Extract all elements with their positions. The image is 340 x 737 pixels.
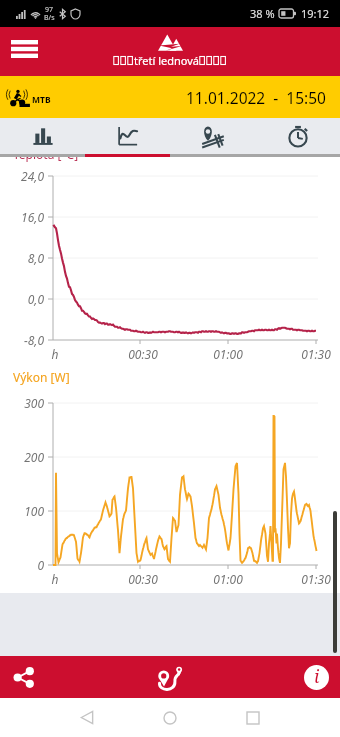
staticText: 0,0 xyxy=(0,291,44,307)
button[interactable]: Show route on map xyxy=(114,656,227,698)
staticText: 0 xyxy=(0,557,44,573)
button[interactable]: Recent apps xyxy=(211,698,294,737)
staticText: 11.01.2022 - 15:50 xyxy=(186,87,326,108)
button[interactable]: Info xyxy=(227,656,340,698)
staticText: třetí lednová xyxy=(134,53,199,68)
button[interactable]: Share xyxy=(0,656,114,698)
staticText: 01:30 xyxy=(286,571,340,587)
staticText: 01:00 xyxy=(198,346,258,362)
staticText: MTB xyxy=(32,94,51,106)
staticText: 97 xyxy=(45,5,54,15)
button[interactable]: Laps xyxy=(255,118,340,154)
button[interactable]: Activity type MTB xyxy=(6,87,51,107)
button[interactable]: Map xyxy=(170,118,255,154)
staticText: i xyxy=(314,665,320,689)
staticText: 100 xyxy=(0,503,44,519)
staticText: 00:30 xyxy=(113,346,173,362)
staticText: 16,0 xyxy=(0,209,44,225)
staticText: 19:12 xyxy=(301,6,330,21)
button[interactable]: Menu xyxy=(6,36,42,62)
staticText: 200 xyxy=(0,449,44,465)
staticText: -8,0 xyxy=(0,332,44,348)
staticText: 8,0 xyxy=(0,250,44,266)
staticText: 01:00 xyxy=(198,571,258,587)
staticText: 24,0 xyxy=(0,168,44,184)
button[interactable]: Graphs xyxy=(85,118,170,154)
staticText: 38 % xyxy=(250,6,275,21)
button[interactable]: Statistics xyxy=(0,118,85,154)
staticText: 01:30 xyxy=(286,346,340,362)
button[interactable]: Home xyxy=(128,698,211,737)
button[interactable]: Back xyxy=(45,698,128,737)
staticText: h xyxy=(25,571,85,587)
staticText: Teplota [°C] xyxy=(13,146,79,162)
staticText: h xyxy=(25,346,85,362)
staticText: 300 xyxy=(0,395,44,411)
staticText: 00:30 xyxy=(113,571,173,587)
staticText: Výkon [W] xyxy=(13,369,70,385)
staticText: B/s xyxy=(44,13,55,23)
